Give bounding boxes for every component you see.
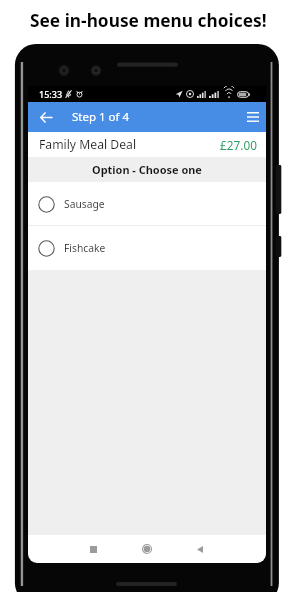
button[interactable]: Navigate up <box>34 102 58 132</box>
staticText: 15:33 <box>39 88 63 100</box>
staticText: £27.00 <box>220 137 257 153</box>
button[interactable]: Back <box>190 535 210 563</box>
staticText: Option - Choose one <box>92 162 202 177</box>
button[interactable]: Recent apps <box>83 535 103 563</box>
staticText: Sausage <box>64 197 105 211</box>
staticText: Fishcake <box>64 241 106 255</box>
staticText: Step 1 of 4 <box>72 109 130 125</box>
staticText: See in-house menu choices! <box>30 9 267 33</box>
button[interactable]: Home <box>135 535 159 563</box>
staticText: Family Meal Deal <box>39 136 137 153</box>
button[interactable]: Fishcake <box>28 226 266 270</box>
button[interactable]: Menu <box>242 102 264 132</box>
button[interactable]: Sausage <box>28 182 266 226</box>
